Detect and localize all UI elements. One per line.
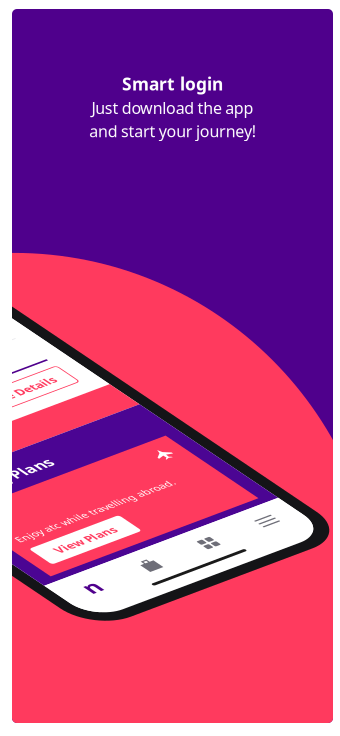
button[interactable]: View Plans <box>51 452 147 480</box>
staticText: Smart login <box>122 72 223 95</box>
button[interactable]: Shop <box>86 514 149 532</box>
button[interactable]: Home <box>24 508 86 538</box>
staticText: Roaming Plans <box>38 350 156 371</box>
staticText: n <box>48 508 63 538</box>
staticText: Enjoy atc while travelling abroad. <box>51 430 219 444</box>
staticText: £29.99 <box>42 257 91 278</box>
button[interactable]: Menu <box>211 514 274 532</box>
button[interactable]: Services <box>149 514 211 532</box>
staticText: View Plans <box>67 458 131 474</box>
staticText: and start your journey! <box>89 120 256 142</box>
staticText: Just download the app <box>91 97 253 118</box>
